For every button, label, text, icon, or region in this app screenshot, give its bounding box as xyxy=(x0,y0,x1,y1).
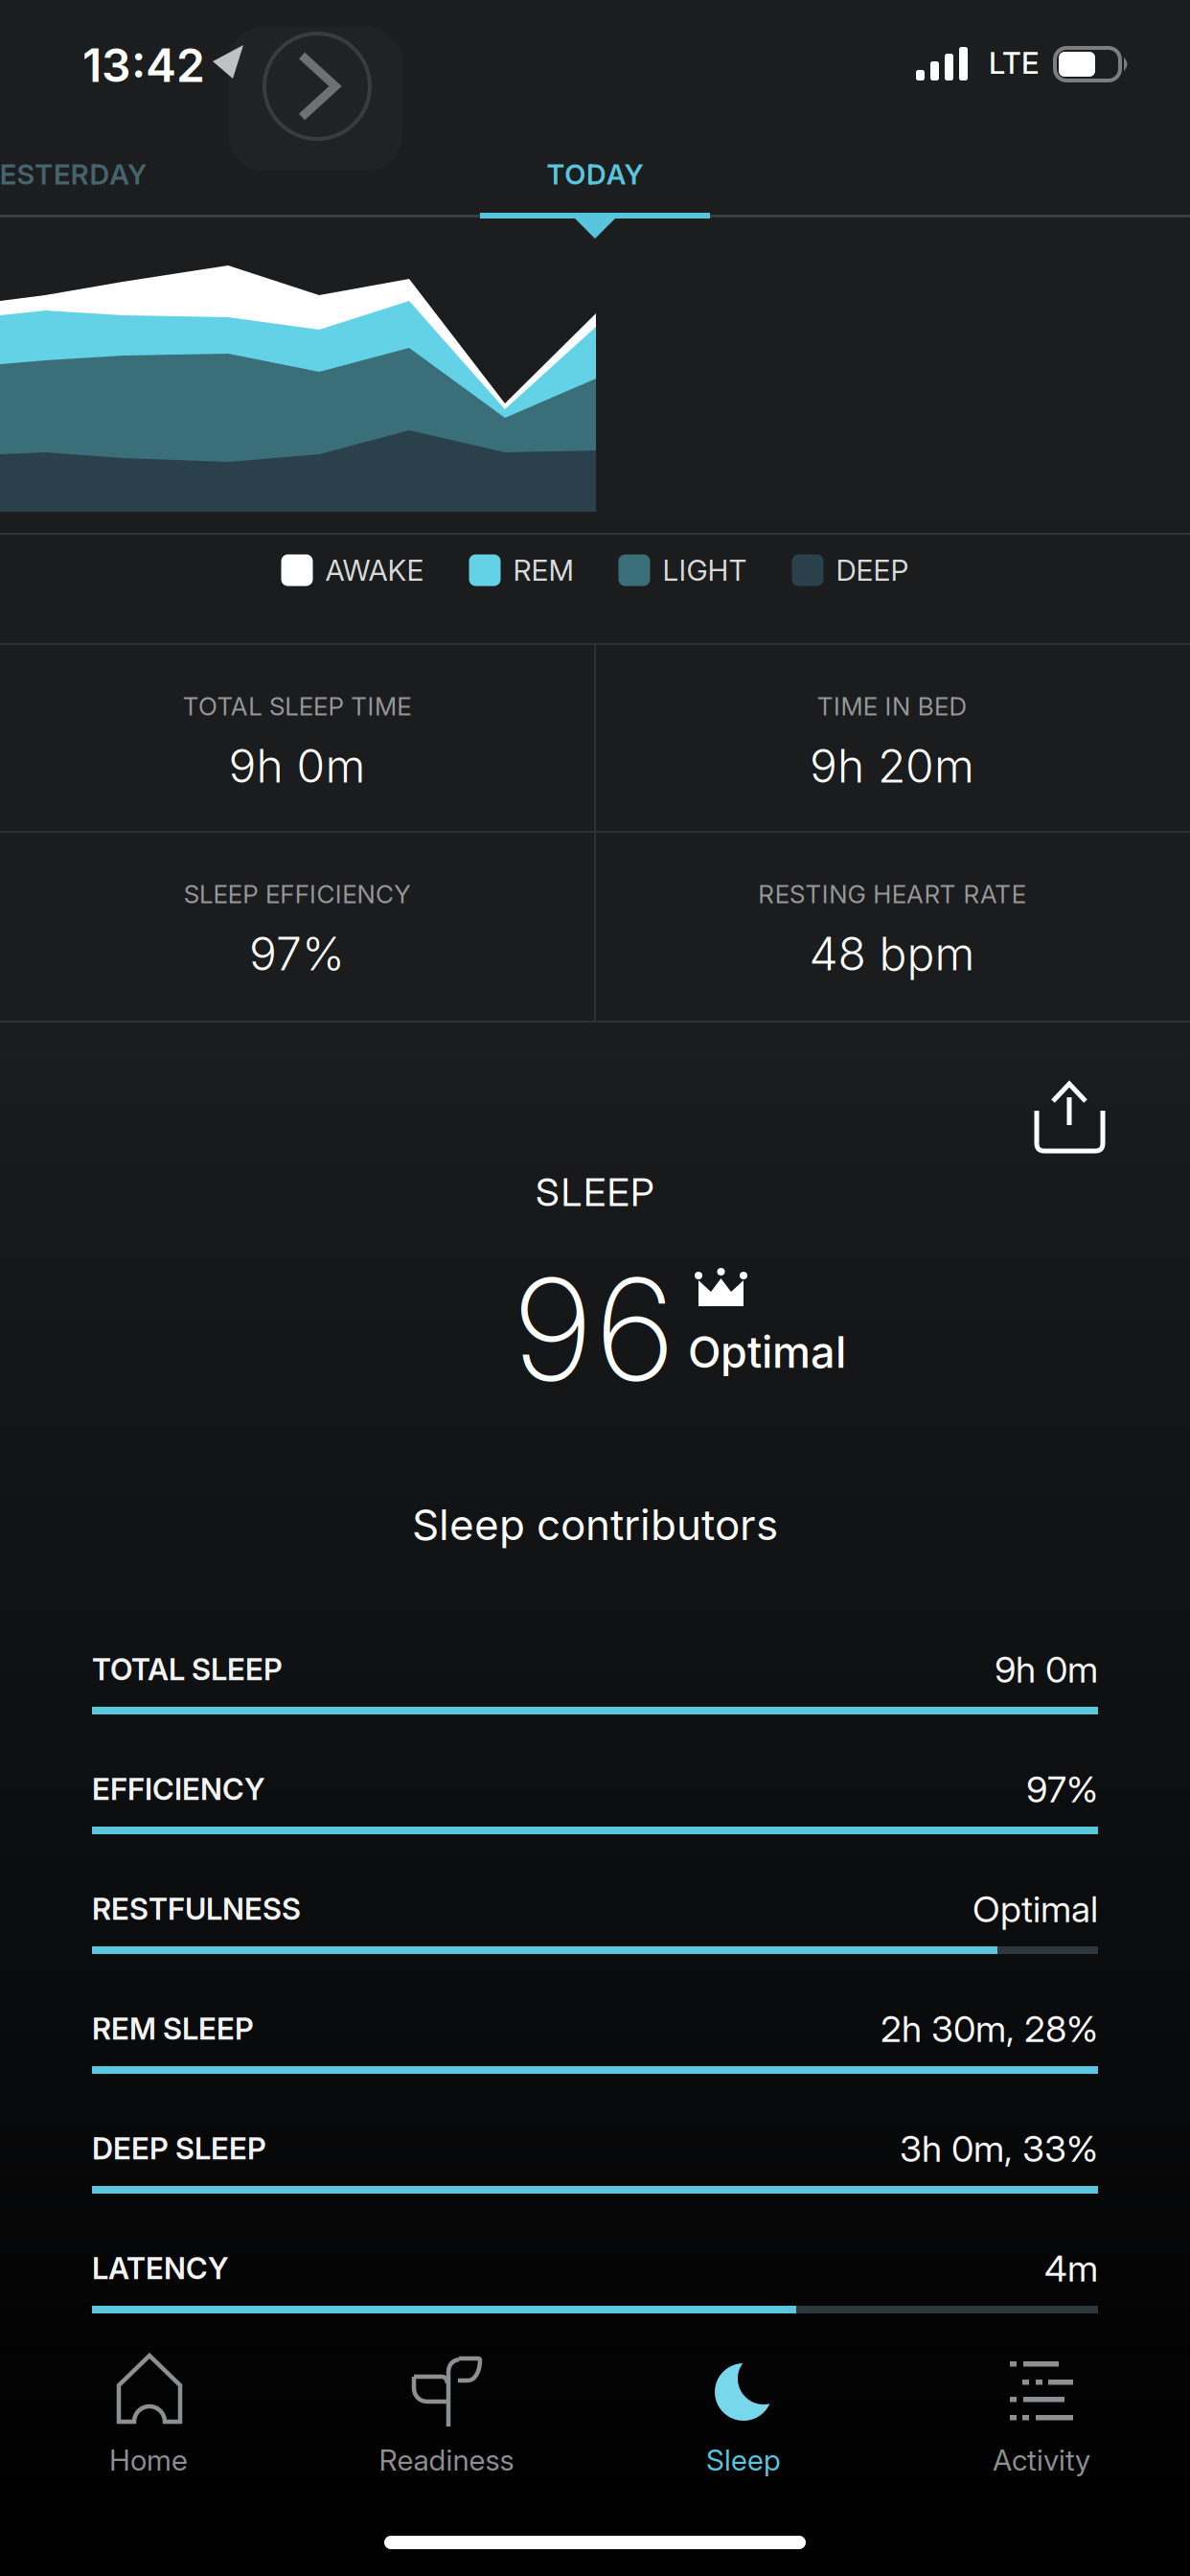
staticText: RESTING HEART RATE xyxy=(758,879,1026,909)
staticText: TOTAL SLEEP TIME xyxy=(183,691,411,721)
button[interactable]: Sleep xyxy=(600,2334,887,2493)
staticText: TOTAL SLEEP xyxy=(92,1651,283,1687)
staticText: Optimal xyxy=(688,1326,846,1378)
staticText: RESTFULNESS xyxy=(92,1891,301,1927)
button[interactable]: Next xyxy=(228,27,402,171)
button[interactable]: TODAY xyxy=(451,146,739,203)
staticText: 9h 0m xyxy=(229,738,366,794)
staticText: 9h 0m xyxy=(995,1647,1098,1691)
staticText: SLEEP EFFICIENCY xyxy=(184,879,410,909)
staticText: 2h 30m, 28% xyxy=(881,2007,1098,2051)
staticText: REM xyxy=(513,553,573,588)
staticText: Sleep xyxy=(706,2443,781,2477)
staticText: Optimal xyxy=(973,1887,1098,1931)
staticText: SLEEP xyxy=(536,1169,654,1215)
staticText: LIGHT xyxy=(663,553,747,588)
button[interactable]: Share xyxy=(1025,1066,1113,1154)
staticText: AWAKE xyxy=(325,553,424,588)
staticText: Readiness xyxy=(379,2443,514,2477)
staticText: DEEP SLEEP xyxy=(92,2131,266,2167)
button[interactable]: Activity xyxy=(898,2334,1185,2493)
staticText: Sleep contributors xyxy=(412,1499,778,1550)
button[interactable]: Home xyxy=(5,2334,292,2493)
staticText: 97% xyxy=(249,926,345,981)
button[interactable]: Readiness xyxy=(303,2334,590,2493)
staticText: 96 xyxy=(512,1244,676,1414)
staticText: 97% xyxy=(1026,1767,1098,1811)
staticText: DEEP xyxy=(836,553,909,588)
staticText: Activity xyxy=(993,2443,1090,2477)
staticText: REM SLEEP xyxy=(92,2011,254,2047)
staticText: Home xyxy=(109,2443,188,2477)
staticText: TIME IN BED xyxy=(817,691,967,721)
staticText: TODAY xyxy=(547,158,643,191)
staticText: YESTERDAY xyxy=(0,158,147,191)
staticText: 13:42 xyxy=(82,37,205,93)
staticText: 3h 0m, 33% xyxy=(900,2127,1098,2171)
staticText: LTE xyxy=(989,45,1039,81)
staticText: 48 bpm xyxy=(809,926,975,981)
staticText: LATENCY xyxy=(92,2250,228,2286)
staticText: EFFICIENCY xyxy=(92,1771,264,1807)
staticText: 4m xyxy=(1044,2246,1098,2290)
button[interactable]: YESTERDAY xyxy=(0,146,169,203)
staticText: 9h 20m xyxy=(810,738,974,794)
